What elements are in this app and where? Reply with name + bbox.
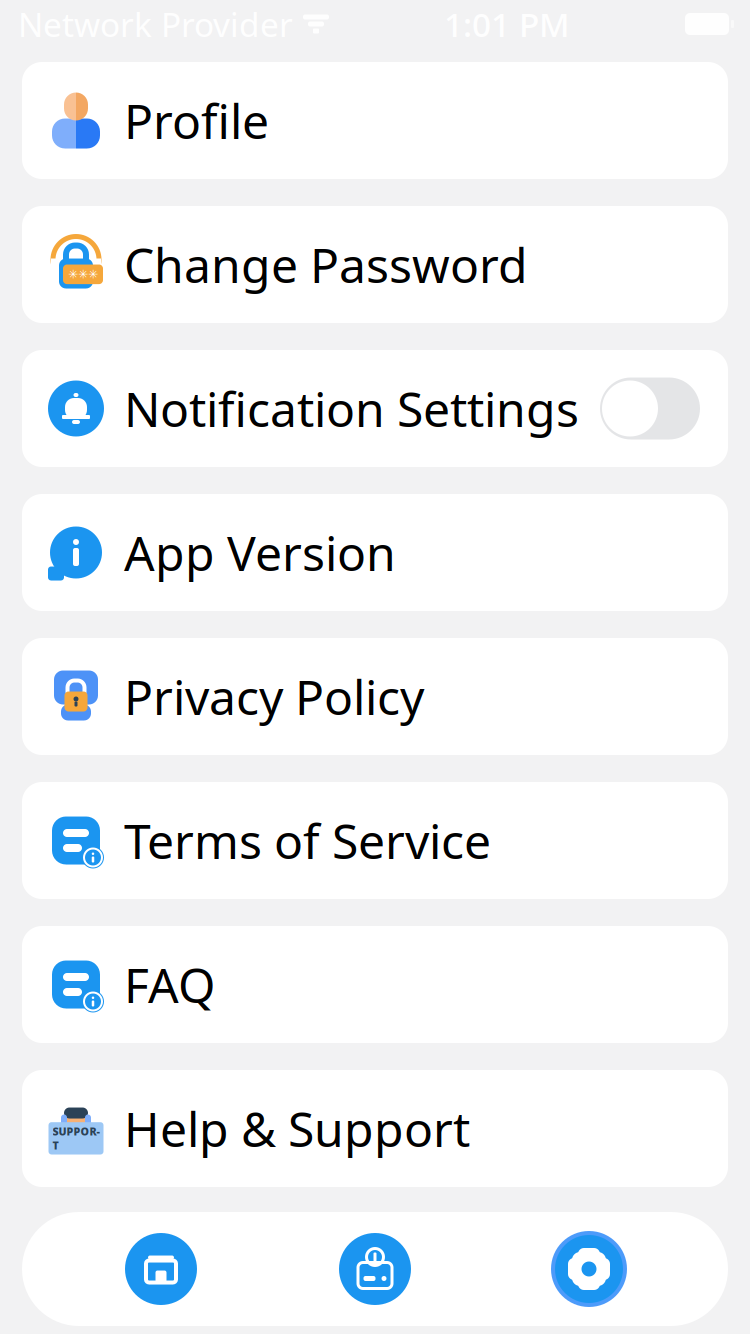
staticText: Privacy Policy [124, 665, 424, 728]
staticText: FAQ [124, 953, 215, 1016]
button[interactable]: FAQ [22, 926, 728, 1043]
button[interactable]: Settings [514, 1219, 664, 1319]
staticText: SUPPORT [52, 1124, 99, 1152]
staticText: Change Password [124, 233, 528, 296]
button[interactable]: SUPPORT [22, 1070, 728, 1187]
staticText: App Version [124, 521, 396, 584]
staticText: ✳︎✳︎✳︎ [68, 267, 98, 281]
button[interactable]: Home [86, 1219, 236, 1319]
button[interactable]: Profile [22, 62, 728, 179]
button[interactable]: ✳︎✳︎✳︎ [22, 206, 728, 323]
button[interactable]: Notification Settings [22, 350, 728, 467]
staticText: Help & Support [124, 1097, 470, 1160]
staticText: Network Provider [18, 2, 293, 46]
button[interactable]: Wallet [300, 1219, 450, 1319]
staticText: Profile [124, 89, 269, 152]
button[interactable]: Terms of Service [22, 782, 728, 899]
staticText: 1:01 PM [444, 2, 570, 46]
button[interactable]: Privacy Policy [22, 638, 728, 755]
staticText: Notification Settings [124, 377, 579, 440]
staticText: Terms of Service [124, 809, 491, 872]
button[interactable]: App Version [22, 494, 728, 611]
